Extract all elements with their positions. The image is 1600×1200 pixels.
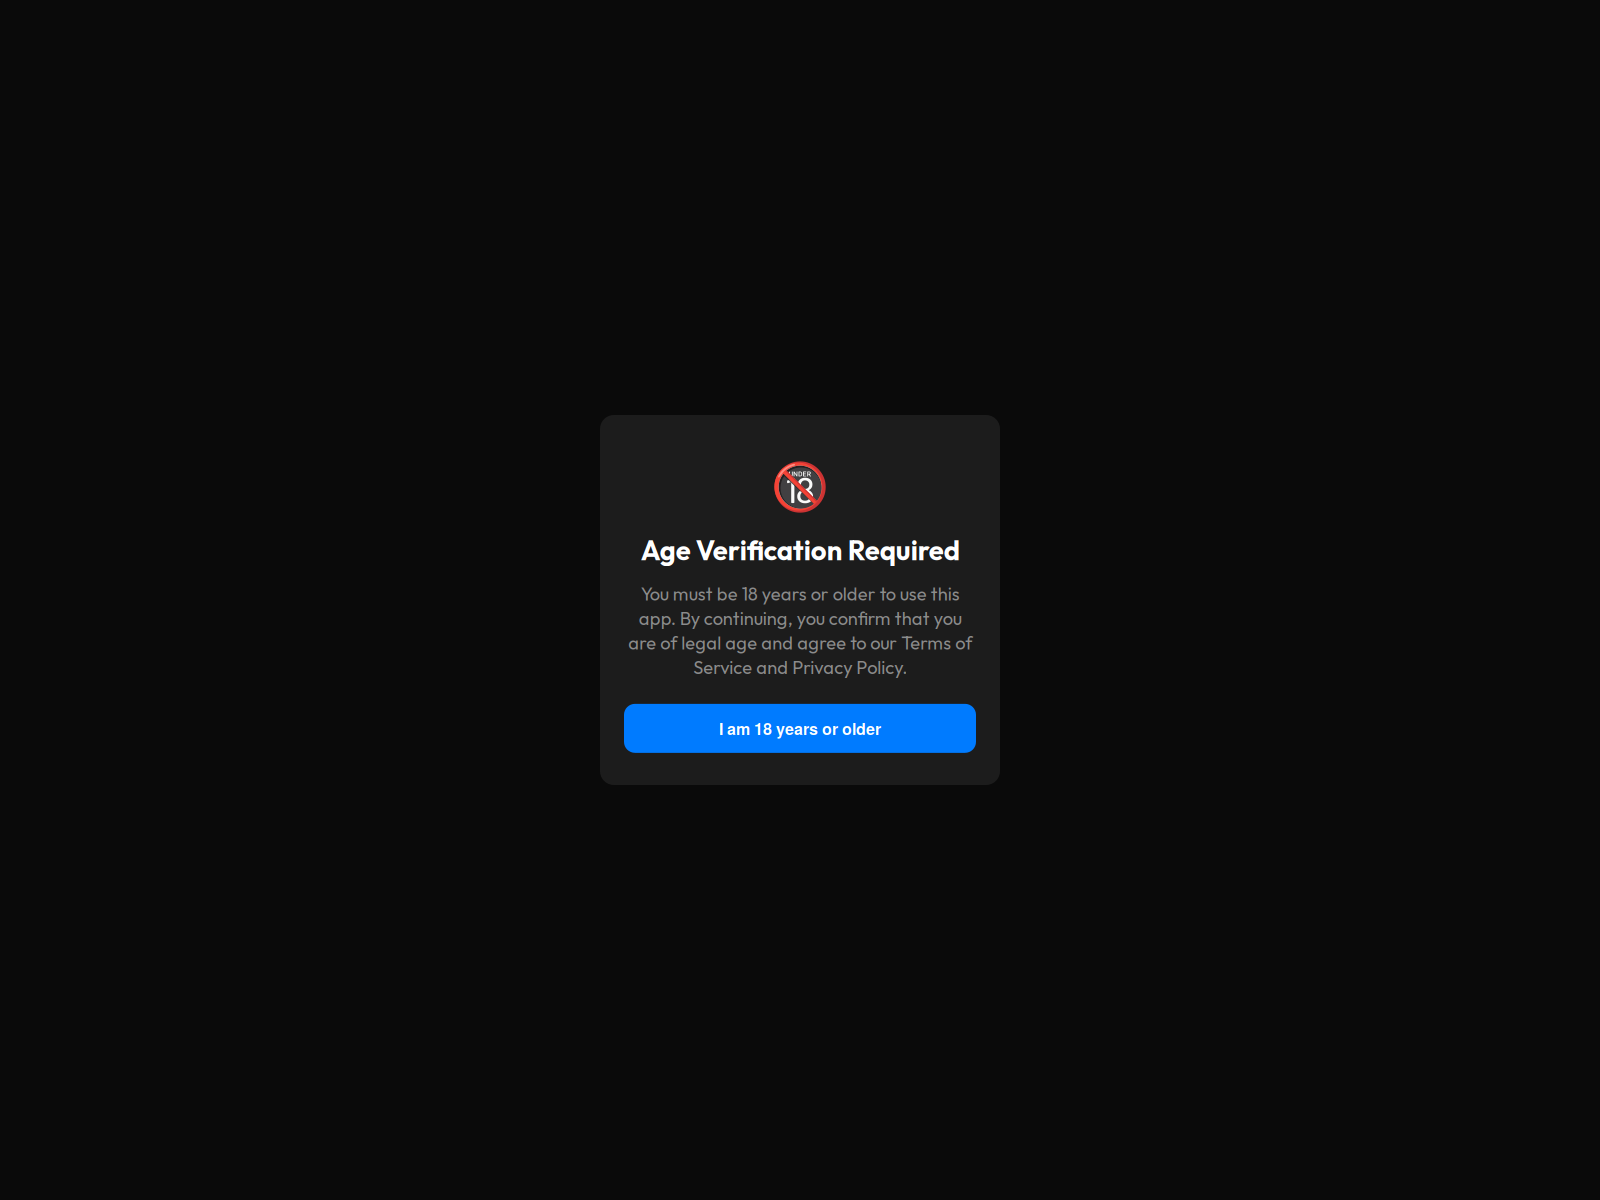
staticText: You must be 18 years or older to use thi… [628, 582, 972, 679]
staticText: 🔞 [771, 460, 829, 515]
staticText: I am 18 years or older [719, 717, 881, 740]
staticText: Age Verification Required [640, 533, 959, 567]
button[interactable]: I am 18 years or older [624, 704, 976, 753]
